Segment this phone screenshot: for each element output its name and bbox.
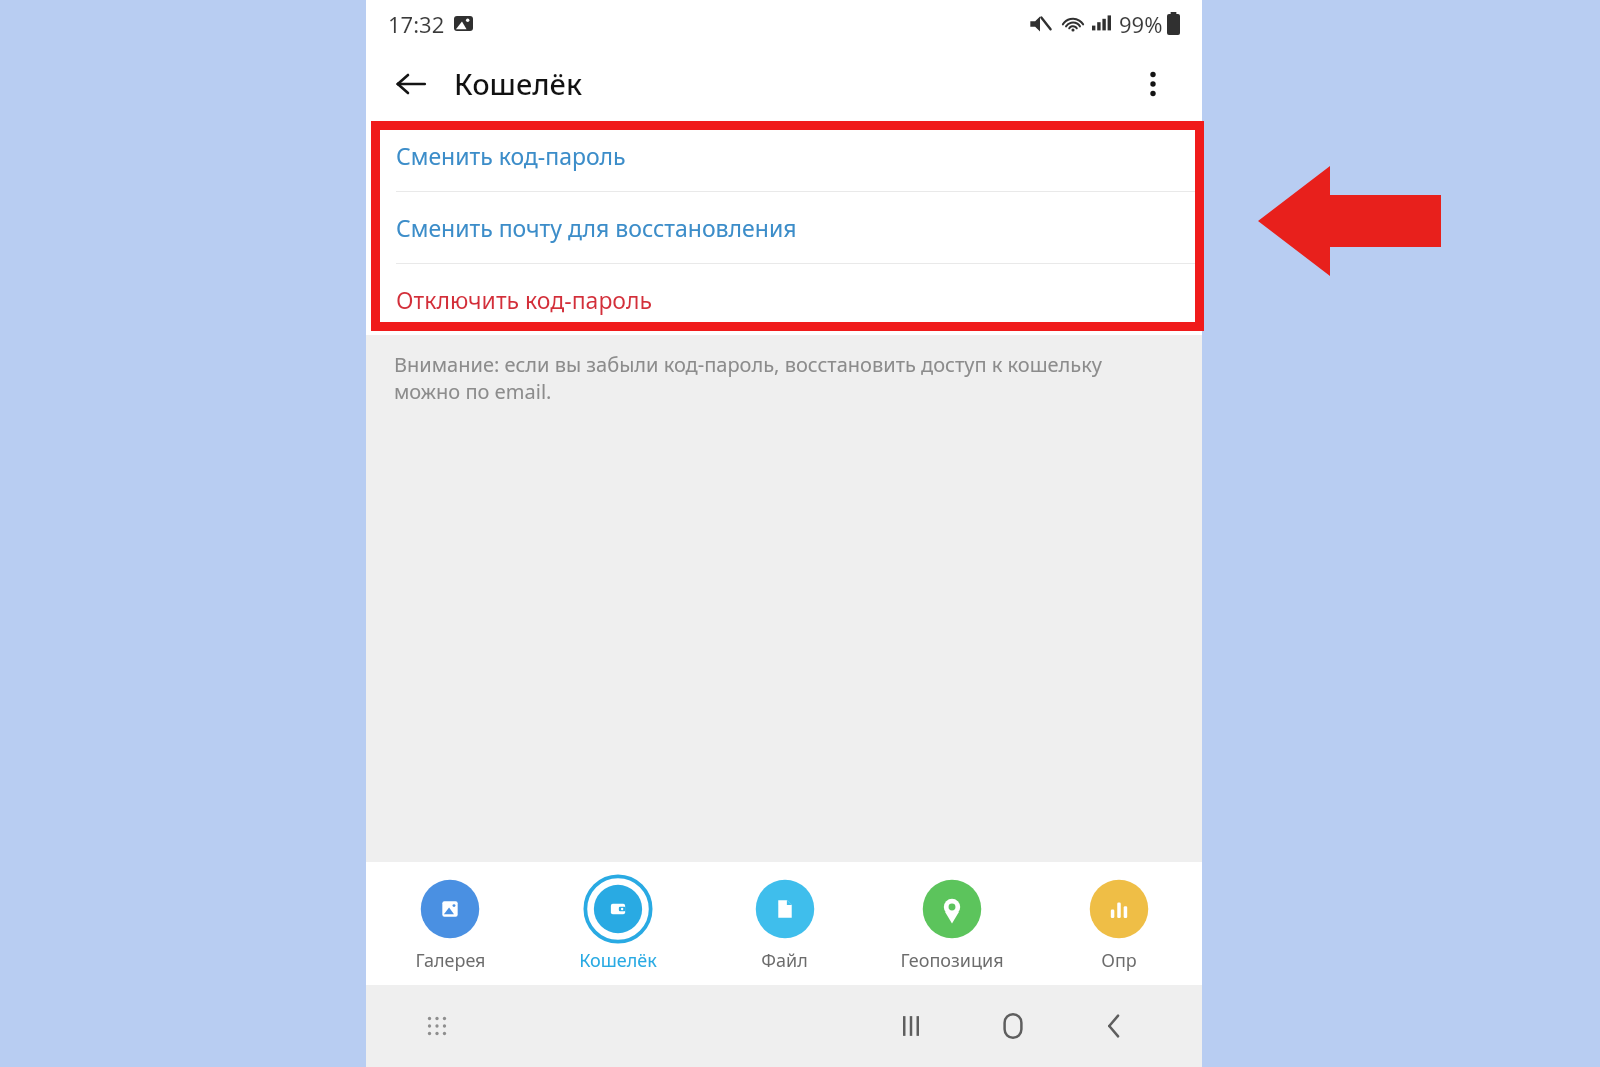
button[interactable]: Опр (1035, 862, 1202, 985)
button[interactable]: All apps (414, 1003, 460, 1049)
staticText: Сменить почту для восстановления (396, 212, 797, 243)
staticText: Отключить код-пароль (396, 284, 653, 315)
staticText: Геопозиция (900, 948, 1004, 973)
staticText: 17:32 (388, 9, 445, 39)
button[interactable]: Галерея (366, 862, 534, 985)
staticText: 99% (1119, 9, 1163, 39)
staticText: Кошелёк (579, 948, 657, 973)
button[interactable]: Кошелёк (534, 862, 701, 985)
button[interactable]: Отключить код-пароль (366, 264, 1202, 335)
staticText: Галерея (415, 948, 486, 973)
staticText: Кошелёк (454, 64, 583, 103)
staticText: Файл (761, 948, 808, 973)
button[interactable]: Back (382, 55, 440, 113)
button[interactable]: Back (1084, 995, 1146, 1057)
button[interactable]: Recent apps (880, 995, 942, 1057)
staticText: Внимание: если вы забыли код-пароль, вос… (394, 351, 1154, 405)
button[interactable]: Сменить код-пароль (366, 120, 1202, 191)
button[interactable]: Файл (701, 862, 868, 985)
button[interactable]: More options (1124, 55, 1182, 113)
button[interactable]: Сменить почту для восстановления (366, 192, 1202, 263)
staticText: Опр (1101, 948, 1137, 973)
staticText: Сменить код-пароль (396, 140, 626, 171)
button[interactable]: Геопозиция (868, 862, 1035, 985)
button[interactable]: Home (982, 995, 1044, 1057)
